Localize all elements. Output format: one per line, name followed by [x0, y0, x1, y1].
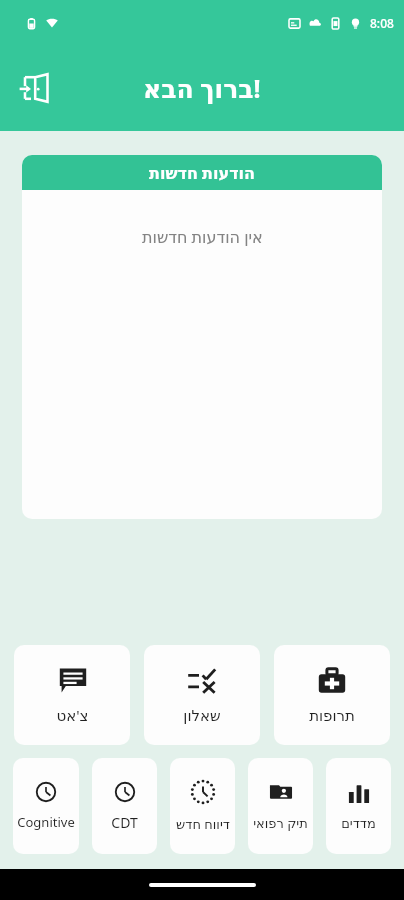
staticText: Cognitive: [17, 813, 75, 831]
staticText: ברוך הבא!: [143, 71, 261, 105]
button[interactable]: דיווח חדש: [170, 758, 235, 854]
button[interactable]: מדדים: [326, 758, 391, 854]
staticText: מדדים: [341, 816, 376, 831]
button[interactable]: שאלון: [144, 645, 260, 745]
button[interactable]: צ'אט: [14, 645, 130, 745]
staticText: CDT: [111, 813, 138, 832]
staticText: שאלון: [183, 707, 221, 724]
staticText: דיווח חדש: [176, 815, 230, 833]
staticText: צ'אט: [56, 705, 89, 725]
button[interactable]: CDT: [92, 758, 157, 854]
staticText: אין הודעות חדשות: [142, 226, 263, 248]
staticText: 8:08: [370, 15, 394, 31]
button[interactable]: Logout: [8, 62, 60, 114]
staticText: תרופות: [309, 707, 355, 724]
button[interactable]: תיק רפואי: [248, 758, 313, 854]
button[interactable]: תרופות: [274, 645, 390, 745]
staticText: תיק רפואי: [253, 814, 308, 832]
button[interactable]: Cognitive: [13, 758, 79, 854]
staticText: הודעות חדשות: [149, 162, 256, 184]
